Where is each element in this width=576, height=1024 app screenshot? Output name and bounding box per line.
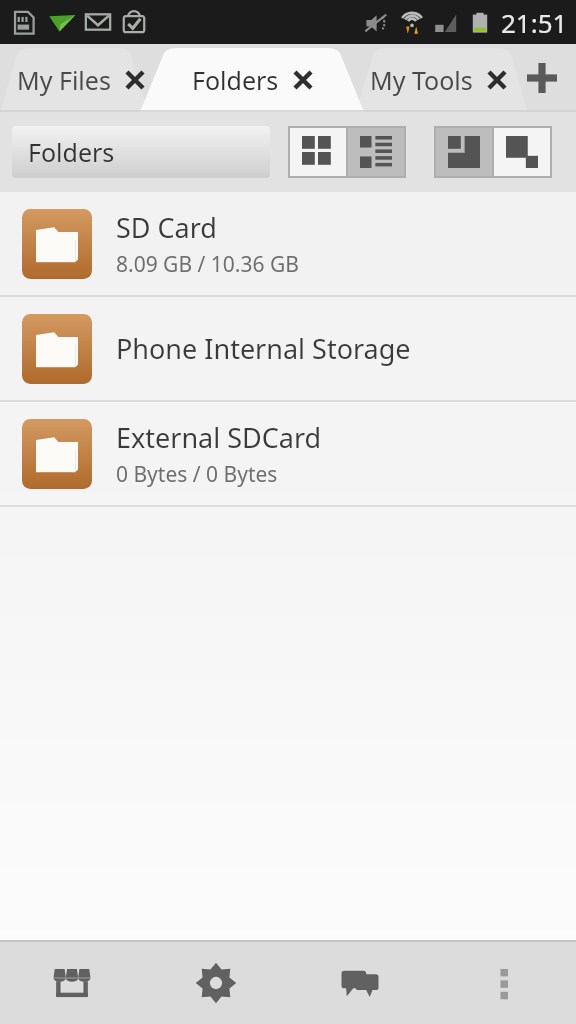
button[interactable]: Settings xyxy=(144,942,288,1024)
staticText: Phone Internal Storage xyxy=(116,330,411,367)
staticText: My Files xyxy=(17,63,111,97)
button[interactable]: My Tools xyxy=(356,48,520,112)
button[interactable]: My Files xyxy=(14,48,148,112)
staticText: Folders xyxy=(192,63,279,97)
button[interactable]: Thumbnail view xyxy=(494,128,550,176)
button[interactable]: External SDCard xyxy=(0,402,576,505)
button[interactable]: Folders xyxy=(12,126,270,178)
staticText: 8.09 GB / 10.36 GB xyxy=(116,250,299,279)
button[interactable]: Grid view xyxy=(290,128,346,176)
button[interactable]: Detail view xyxy=(436,128,492,176)
staticText: 21:51 xyxy=(501,5,568,40)
staticText: My Tools xyxy=(370,63,473,97)
button[interactable]: Folders xyxy=(140,48,364,112)
button[interactable]: New tab xyxy=(514,50,570,106)
button[interactable]: More options xyxy=(432,942,576,1024)
button[interactable]: SD Card xyxy=(0,192,576,295)
button[interactable]: Phone Internal Storage xyxy=(0,297,576,400)
button[interactable]: Store xyxy=(0,942,144,1024)
staticText: 0 Bytes / 0 Bytes xyxy=(116,460,278,489)
staticText: External SDCard xyxy=(116,419,322,456)
staticText: SD Card xyxy=(116,209,217,246)
button[interactable]: Messages xyxy=(288,942,432,1024)
staticText: Folders xyxy=(28,135,115,169)
button[interactable]: List view xyxy=(348,128,404,176)
